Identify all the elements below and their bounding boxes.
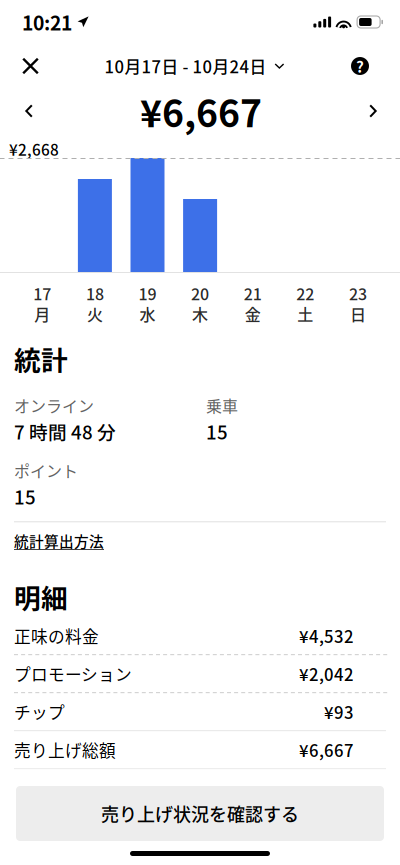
staticText: 22 bbox=[296, 284, 314, 302]
staticText: 統計算出方法 bbox=[14, 532, 104, 549]
button[interactable]: ヘルプ bbox=[341, 44, 390, 88]
staticText: 売り上げ状況を確認する bbox=[101, 803, 299, 824]
staticText: 21 bbox=[244, 284, 262, 302]
staticText: ポイント bbox=[14, 461, 78, 480]
staticText: ¥4,532 bbox=[299, 626, 354, 645]
staticText: ¥2,042 bbox=[299, 664, 354, 683]
staticText: ? bbox=[356, 57, 364, 75]
staticText: 金 bbox=[245, 304, 261, 323]
staticText: 7 時間 48 分 bbox=[14, 420, 116, 442]
staticText: 19 bbox=[138, 284, 156, 302]
staticText: 15 bbox=[14, 486, 36, 507]
staticText: 乗車 bbox=[206, 396, 238, 414]
button[interactable]: 統計算出方法 bbox=[14, 526, 386, 555]
staticText: 23 bbox=[349, 284, 367, 302]
button[interactable]: 10月17日 - 10月24日 bbox=[96, 43, 292, 89]
staticText: 月 bbox=[34, 304, 50, 323]
staticText: オンライン bbox=[14, 396, 94, 414]
staticText: 17 bbox=[33, 284, 51, 302]
staticText: 売り上げ総額 bbox=[14, 740, 116, 759]
staticText: 日 bbox=[350, 304, 366, 323]
button[interactable]: 次の週 bbox=[356, 92, 388, 130]
staticText: 水 bbox=[139, 304, 155, 323]
staticText: 15 bbox=[206, 420, 228, 442]
staticText: 統計 bbox=[14, 343, 68, 374]
staticText: 20 bbox=[191, 284, 209, 302]
staticText: 明細 bbox=[14, 581, 68, 612]
staticText: ¥6,667 bbox=[299, 740, 354, 759]
staticText: 火 bbox=[87, 304, 103, 323]
staticText: 18 bbox=[86, 284, 104, 302]
button[interactable]: 売り上げ状況を確認する bbox=[16, 786, 384, 841]
staticText: ¥6,667 bbox=[140, 89, 262, 133]
staticText: 木 bbox=[192, 304, 208, 323]
staticText: ¥93 bbox=[324, 702, 354, 721]
staticText: 10:21 bbox=[22, 11, 72, 33]
staticText: 正味の料金 bbox=[14, 626, 99, 645]
staticText: 土 bbox=[297, 304, 313, 323]
staticText: プロモーション bbox=[14, 664, 132, 683]
staticText: チップ bbox=[14, 702, 65, 721]
staticText: ¥2,668 bbox=[9, 140, 59, 158]
staticText: 10月17日 - 10月24日 bbox=[104, 56, 266, 76]
button[interactable]: 前の週 bbox=[12, 92, 46, 130]
button[interactable]: 閉じる bbox=[10, 43, 48, 88]
